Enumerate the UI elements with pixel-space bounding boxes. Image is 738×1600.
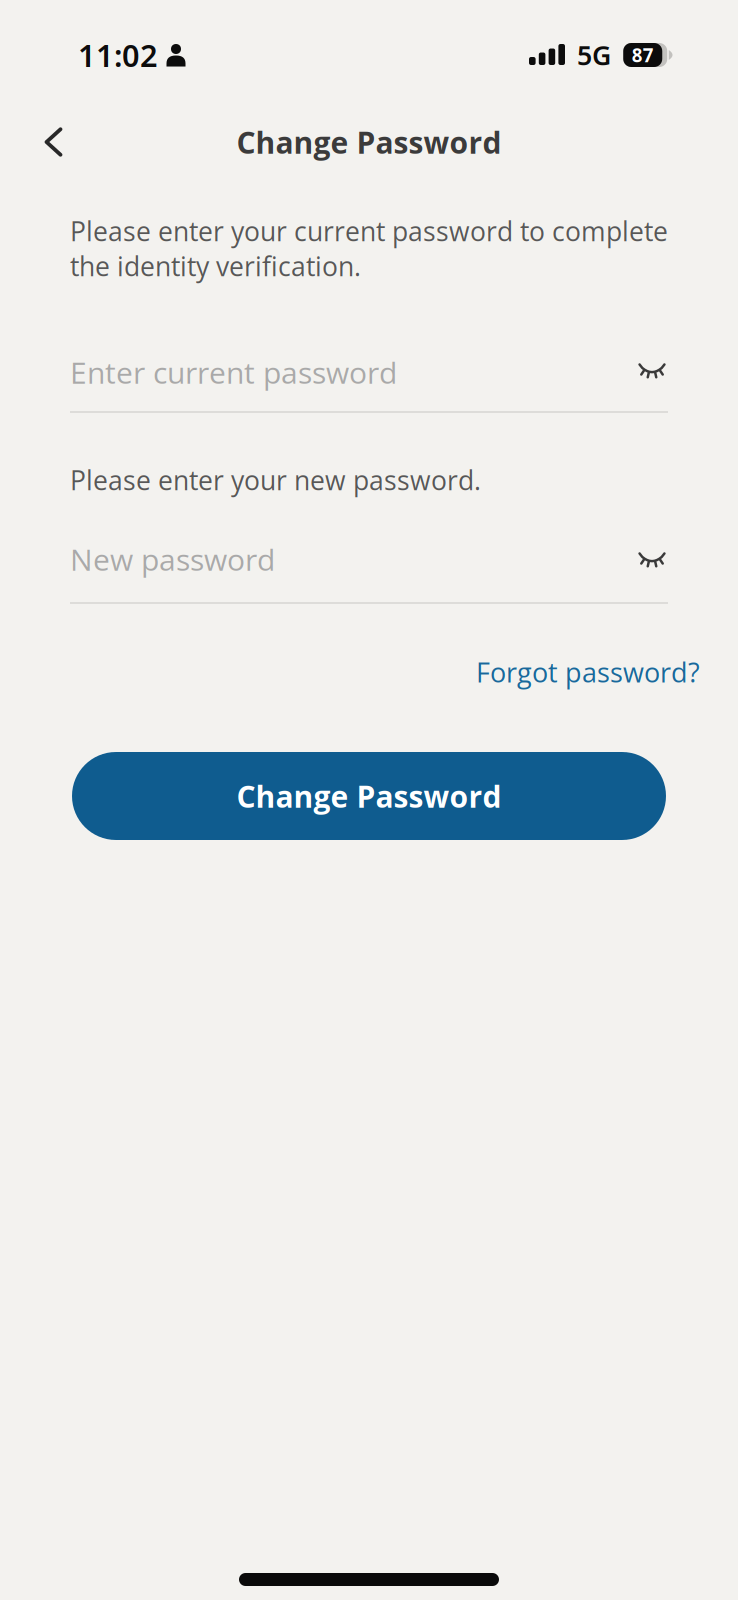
- staticText: 11:02: [78, 35, 158, 75]
- button[interactable]: Show password: [632, 357, 671, 385]
- staticText: Change Password: [236, 776, 501, 816]
- button[interactable]: Show password: [632, 546, 671, 574]
- staticText: 87: [632, 43, 654, 67]
- button[interactable]: Change Password: [72, 752, 666, 840]
- button[interactable]: Back: [36, 119, 70, 165]
- staticText: New password: [70, 539, 275, 579]
- staticText: Please enter your current password to co…: [70, 213, 668, 249]
- staticText: the identity verification.: [70, 248, 361, 284]
- staticText: Change Password: [236, 122, 501, 162]
- staticText: Enter current password: [70, 352, 397, 392]
- staticText: Please enter your new password.: [70, 462, 481, 498]
- staticText: 5G: [577, 37, 611, 73]
- button[interactable]: Forgot password?: [70, 654, 700, 690]
- staticText: Forgot password?: [476, 654, 700, 690]
